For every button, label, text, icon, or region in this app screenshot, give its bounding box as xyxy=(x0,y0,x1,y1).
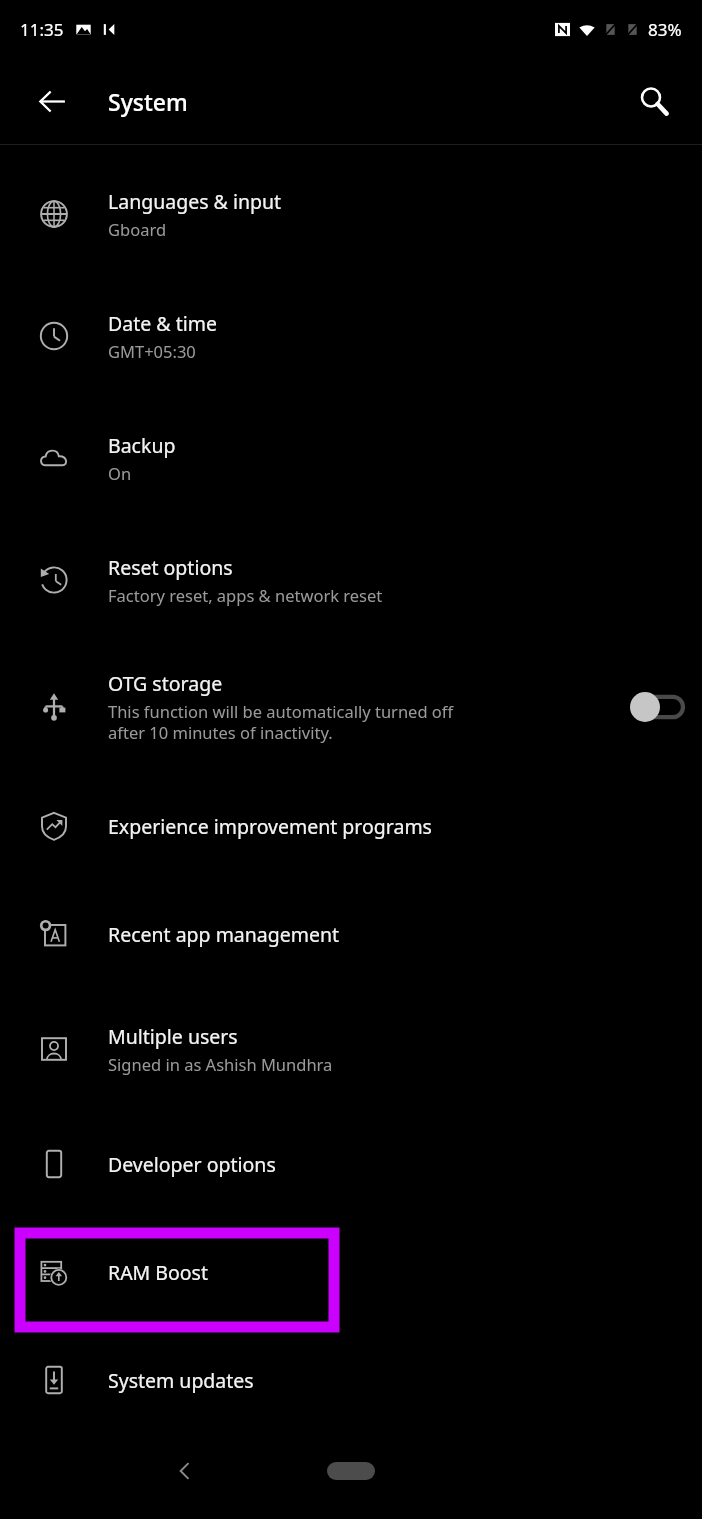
staticText: On xyxy=(108,462,132,484)
staticText: Multiple users xyxy=(108,1023,238,1050)
staticText: 11:35 xyxy=(20,18,64,41)
button[interactable]: Back xyxy=(155,1441,215,1501)
staticText: Factory reset, apps & network reset xyxy=(108,584,383,606)
button[interactable]: Backup xyxy=(0,397,702,519)
staticText: This function will be automatically turn… xyxy=(108,700,454,744)
staticText: Languages & input xyxy=(108,188,282,215)
button[interactable]: Search xyxy=(626,73,682,129)
button[interactable]: Recent app management xyxy=(0,880,702,988)
staticText: Signed in as Ashish Mundhra xyxy=(108,1053,333,1075)
staticText: Gboard xyxy=(108,218,167,240)
staticText: 83% xyxy=(648,18,682,41)
staticText: Recent app management xyxy=(108,921,340,948)
button[interactable]: System updates xyxy=(0,1326,702,1434)
button[interactable]: Date & time xyxy=(0,275,702,397)
button[interactable]: OTG storage xyxy=(0,641,702,772)
button[interactable]: Reset options xyxy=(0,519,702,641)
button[interactable]: Home xyxy=(327,1462,375,1480)
button[interactable]: Experience improvement programs xyxy=(0,772,702,880)
button[interactable]: Multiple users xyxy=(0,988,702,1110)
staticText: Backup xyxy=(108,432,176,459)
button[interactable]: Languages & input xyxy=(0,153,702,275)
staticText: Date & time xyxy=(108,310,217,337)
staticText: GMT+05:30 xyxy=(108,340,196,362)
staticText: Reset options xyxy=(108,554,233,581)
button[interactable]: Developer options xyxy=(0,1110,702,1218)
staticText: System updates xyxy=(108,1367,254,1394)
button[interactable]: Back xyxy=(24,73,80,129)
staticText: OTG storage xyxy=(108,670,223,697)
staticText: System xyxy=(108,86,188,117)
button[interactable]: OTG storage toggle xyxy=(612,692,702,722)
button[interactable]: RAM Boost xyxy=(0,1218,702,1326)
staticText: RAM Boost xyxy=(108,1259,208,1286)
staticText: Developer options xyxy=(108,1151,276,1178)
staticText: Experience improvement programs xyxy=(108,813,432,840)
